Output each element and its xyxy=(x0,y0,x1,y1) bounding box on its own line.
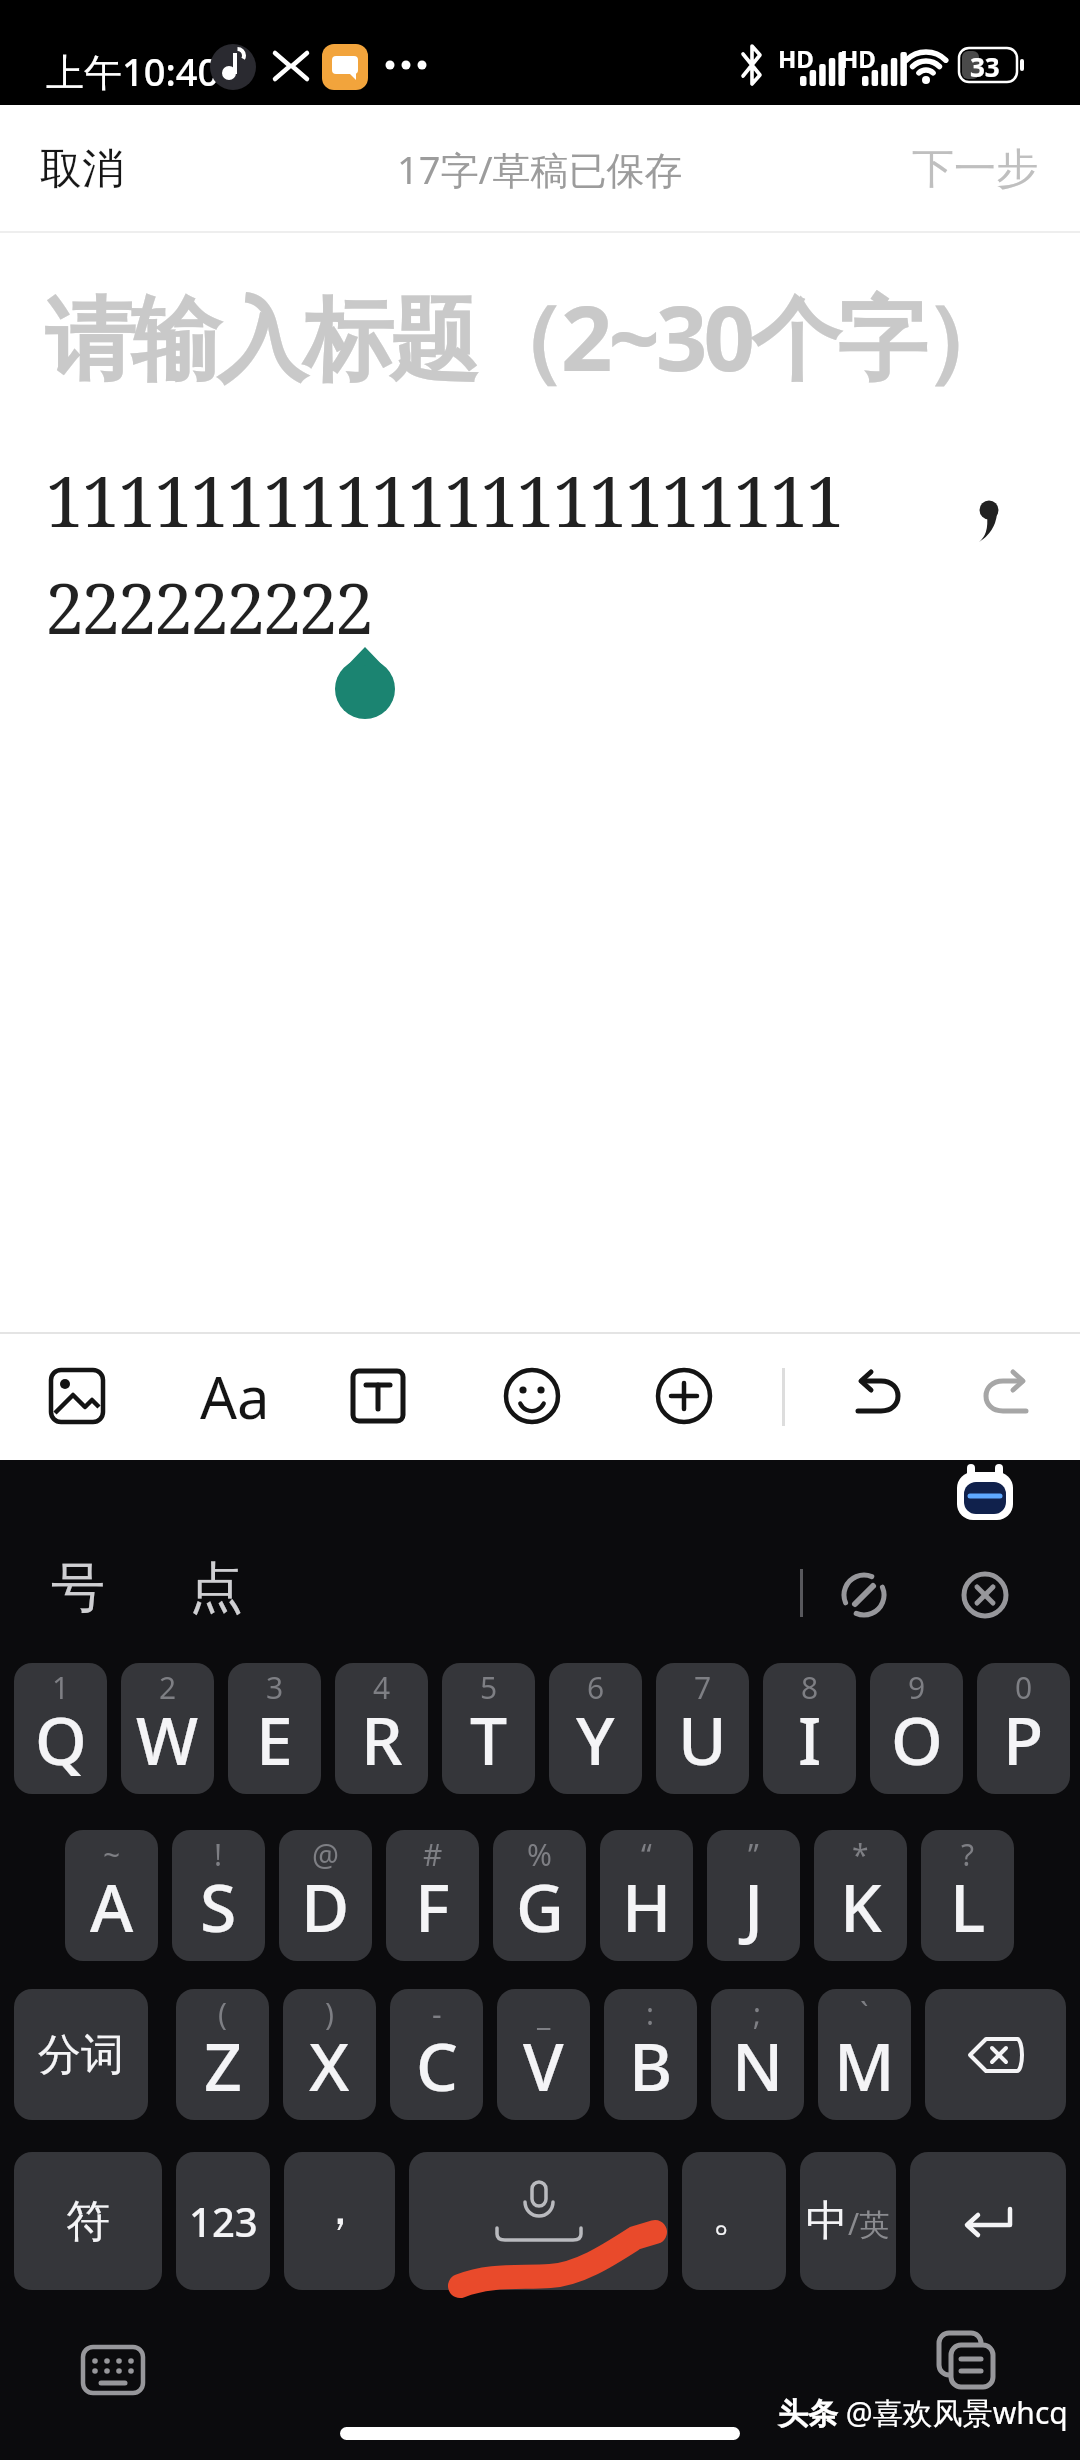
staticText: “ xyxy=(641,1834,652,1875)
button[interactable]: - xyxy=(390,1989,483,2120)
staticText: ， xyxy=(317,2180,363,2238)
button[interactable]: 8 xyxy=(763,1663,856,1794)
button[interactable] xyxy=(840,1571,888,1619)
staticText: 中/英 xyxy=(806,2195,890,2248)
staticText: N xyxy=(732,2020,784,2110)
button[interactable] xyxy=(925,1989,1066,2120)
button[interactable] xyxy=(346,1364,410,1428)
button[interactable]: 点 xyxy=(168,1545,264,1631)
button[interactable]: ` xyxy=(818,1989,911,2120)
button[interactable]: 符 xyxy=(14,2152,162,2290)
staticText: : xyxy=(646,1993,655,2034)
button[interactable] xyxy=(932,2330,1000,2398)
staticText: Y xyxy=(576,1694,615,1784)
staticText: A xyxy=(90,1861,134,1951)
button[interactable]: ! xyxy=(172,1830,265,1961)
staticText: W xyxy=(136,1694,199,1784)
staticText: 8 xyxy=(801,1667,819,1708)
button[interactable]: 7 xyxy=(656,1663,749,1794)
button[interactable]: # xyxy=(386,1830,479,1961)
button[interactable]: : xyxy=(604,1989,697,2120)
staticText: 5 xyxy=(480,1667,498,1708)
staticText: % xyxy=(527,1834,552,1875)
staticText: 取消 xyxy=(40,143,124,196)
staticText: T xyxy=(470,1694,508,1784)
staticText: R xyxy=(361,1694,403,1784)
staticText: L xyxy=(950,1861,986,1951)
button[interactable]: ~ xyxy=(65,1830,158,1961)
staticText: M xyxy=(834,2020,895,2110)
staticText: J xyxy=(744,1861,764,1951)
staticText: Z xyxy=(204,2020,242,2110)
button[interactable]: 0 xyxy=(977,1663,1070,1794)
button[interactable]: 3 xyxy=(228,1663,321,1794)
button[interactable] xyxy=(500,1364,564,1428)
button[interactable] xyxy=(409,2152,668,2290)
button[interactable]: 2 xyxy=(121,1663,214,1794)
staticText: 头条 @喜欢风景whcq xyxy=(778,2392,1068,2433)
staticText: # xyxy=(423,1834,443,1875)
staticText: 符 xyxy=(66,2194,110,2249)
staticText: ( xyxy=(218,1993,227,2034)
button[interactable]: 取消 xyxy=(40,143,124,196)
button[interactable]: % xyxy=(493,1830,586,1961)
button[interactable] xyxy=(961,1571,1009,1619)
staticText: 17字/草稿已保存 xyxy=(397,143,683,195)
button[interactable] xyxy=(652,1364,716,1428)
button[interactable] xyxy=(845,1364,909,1428)
button[interactable]: 123 xyxy=(176,2152,270,2290)
button[interactable] xyxy=(975,1364,1039,1428)
staticText: 1111111111111111111111 xyxy=(45,452,843,547)
button[interactable] xyxy=(910,2152,1066,2290)
button[interactable]: 6 xyxy=(549,1663,642,1794)
staticText: 上午10:40 xyxy=(46,45,220,97)
staticText: 222222222 xyxy=(45,559,372,654)
button[interactable]: ( xyxy=(176,1989,269,2120)
staticText: 3 xyxy=(266,1667,284,1708)
button[interactable]: ? xyxy=(921,1830,1014,1961)
button[interactable]: 5 xyxy=(442,1663,535,1794)
button[interactable]: 分词 xyxy=(14,1989,148,2120)
button[interactable]: Aa xyxy=(190,1354,280,1438)
staticText: Q xyxy=(35,1694,87,1784)
button[interactable]: ” xyxy=(707,1830,800,1961)
button[interactable]: ， xyxy=(284,2152,395,2290)
button[interactable]: 。 xyxy=(682,2152,786,2290)
staticText: 6 xyxy=(587,1667,605,1708)
staticText: ? xyxy=(961,1834,975,1875)
staticText: 下一步 xyxy=(912,143,1038,196)
staticText: 7 xyxy=(694,1667,712,1708)
staticText: * xyxy=(852,1834,869,1875)
staticText: 。 xyxy=(712,2188,756,2243)
button[interactable]: 1 xyxy=(14,1663,107,1794)
staticText: 点 xyxy=(189,1554,243,1622)
button[interactable]: “ xyxy=(600,1830,693,1961)
button[interactable]: 号 xyxy=(30,1545,126,1631)
button[interactable]: _ xyxy=(497,1989,590,2120)
staticText: Aa xyxy=(200,1357,270,1436)
staticText: @ xyxy=(312,1834,339,1875)
button[interactable] xyxy=(45,1364,109,1428)
staticText: E xyxy=(256,1694,293,1784)
staticText: 分词 xyxy=(38,2028,124,2082)
staticText: O xyxy=(891,1694,943,1784)
button[interactable]: 4 xyxy=(335,1663,428,1794)
button[interactable]: * xyxy=(814,1830,907,1961)
button[interactable]: ; xyxy=(711,1989,804,2120)
button[interactable]: ) xyxy=(283,1989,376,2120)
staticText: 1 xyxy=(52,1667,70,1708)
staticText: S xyxy=(200,1861,237,1951)
button[interactable]: 中/英 xyxy=(800,2152,896,2290)
button[interactable]: @ xyxy=(279,1830,372,1961)
staticText: 0 xyxy=(1015,1667,1033,1708)
button[interactable] xyxy=(80,2336,146,2402)
staticText: ` xyxy=(860,1993,869,2034)
staticText: ! xyxy=(214,1834,223,1875)
staticText: _ xyxy=(537,1993,551,2034)
staticText: 请输入标题（2~30个字） xyxy=(45,275,1009,398)
button[interactable]: 9 xyxy=(870,1663,963,1794)
button[interactable]: 下一步 xyxy=(912,143,1038,196)
staticText: C xyxy=(416,2020,458,2110)
staticText: K xyxy=(840,1861,882,1951)
staticText: ” xyxy=(748,1834,759,1875)
